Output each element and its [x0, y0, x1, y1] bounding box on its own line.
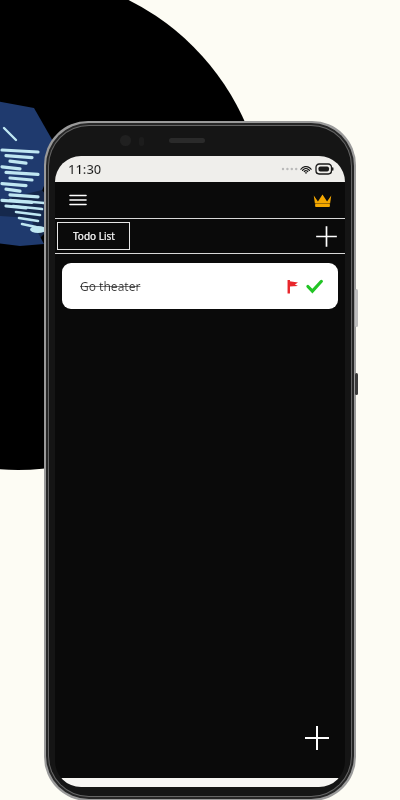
button[interactable]: Go theater: [62, 263, 338, 309]
button[interactable]: Premium: [305, 183, 339, 217]
button[interactable]: Add list: [311, 221, 341, 251]
button[interactable]: Open navigation menu: [61, 183, 95, 217]
button[interactable]: Add task: [297, 718, 337, 758]
button[interactable]: Mark complete: [304, 276, 324, 296]
button[interactable]: Todo List: [57, 222, 130, 250]
button[interactable]: Priority flag: [283, 277, 301, 295]
staticText: 11:30: [68, 160, 102, 178]
staticText: Todo List: [73, 229, 115, 243]
staticText: Go theater: [80, 278, 141, 294]
